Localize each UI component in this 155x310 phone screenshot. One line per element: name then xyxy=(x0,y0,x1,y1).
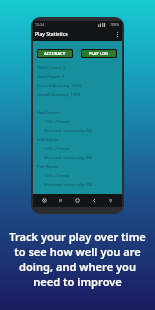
button[interactable]: Recents xyxy=(105,195,116,206)
button[interactable]: Do not disturb xyxy=(39,195,50,206)
staticText: 100% -- 0 hands xyxy=(44,146,70,151)
staticText: Total Correct: 0 xyxy=(37,65,66,70)
staticText: Most made incorrect play: N/A xyxy=(44,155,93,160)
staticText: Most made incorrect play: N/A xyxy=(44,128,93,133)
staticText: Track your play over time to see how wel… xyxy=(0,229,155,289)
staticText: Soft Hands: xyxy=(37,137,59,142)
button[interactable]: More options xyxy=(113,30,122,39)
button[interactable]: Pause xyxy=(55,195,66,206)
staticText: 100% xyxy=(110,22,120,27)
button[interactable]: Back xyxy=(89,195,100,206)
staticText: Hard Hands: xyxy=(37,110,61,115)
button[interactable]: Home xyxy=(72,195,83,206)
button[interactable]: ACCURACY xyxy=(38,50,72,57)
staticText: Total Played: 0 xyxy=(37,74,64,79)
staticText: Current Accuracy: 100% xyxy=(37,83,82,88)
staticText: 100% -- 0 hands xyxy=(44,173,70,178)
staticText: 100% -- 0 hands xyxy=(44,119,70,124)
staticText: Most made incorrect play: N/A xyxy=(44,182,93,187)
staticText: Overall Accuracy: 100% xyxy=(37,92,81,97)
staticText: 12:34 xyxy=(35,22,45,27)
staticText: Play Statistics xyxy=(35,31,68,38)
staticText: ACCURACY xyxy=(44,51,66,56)
button[interactable]: PLAY LOG xyxy=(82,50,116,57)
staticText: PLAY LOG xyxy=(89,51,109,56)
staticText: Pair Hands: xyxy=(37,164,59,169)
